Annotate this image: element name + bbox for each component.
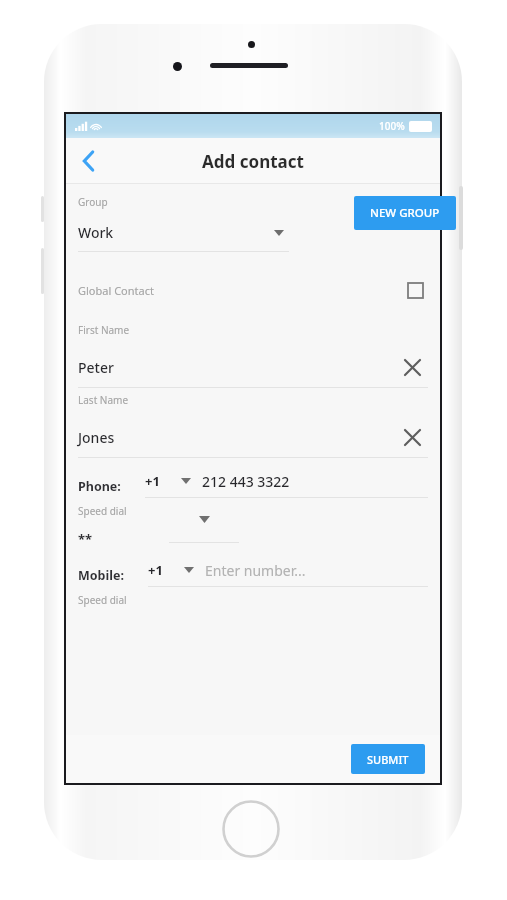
staticText: Mobile: xyxy=(78,567,124,584)
button[interactable]: Global Contact xyxy=(66,262,440,318)
staticText: Jones xyxy=(78,428,115,447)
staticText: NEW GROUP xyxy=(370,205,440,221)
button[interactable]: Country code xyxy=(176,471,196,491)
staticText: Phone: xyxy=(78,478,121,495)
staticText: 212 443 3322 xyxy=(202,472,290,491)
staticText: 100% xyxy=(379,119,405,133)
staticText: First Name xyxy=(78,323,130,337)
button[interactable]: Clear First Name xyxy=(396,351,428,383)
button[interactable]: Country code xyxy=(179,560,199,580)
button[interactable]: NEW GROUP xyxy=(354,196,456,230)
staticText: Speed dial xyxy=(78,504,127,518)
staticText: Global Contact xyxy=(78,283,154,298)
staticText: Add contact xyxy=(202,150,304,173)
staticText: Peter xyxy=(78,358,114,377)
staticText: SUBMIT xyxy=(367,752,409,767)
staticText: Enter number... xyxy=(205,561,306,580)
staticText: +1 xyxy=(145,472,160,490)
button[interactable]: Back xyxy=(66,138,110,184)
button[interactable]: Clear Last Name xyxy=(396,421,428,453)
button[interactable]: Speed dial selector xyxy=(169,510,239,528)
staticText: Work xyxy=(78,223,114,242)
staticText: Last Name xyxy=(78,393,129,407)
button[interactable]: Work xyxy=(78,223,289,242)
button[interactable]: SUBMIT xyxy=(351,744,425,774)
staticText: ** xyxy=(78,530,93,548)
staticText: Speed dial xyxy=(78,593,127,607)
staticText: Group xyxy=(78,195,108,209)
staticText: +1 xyxy=(148,561,163,579)
